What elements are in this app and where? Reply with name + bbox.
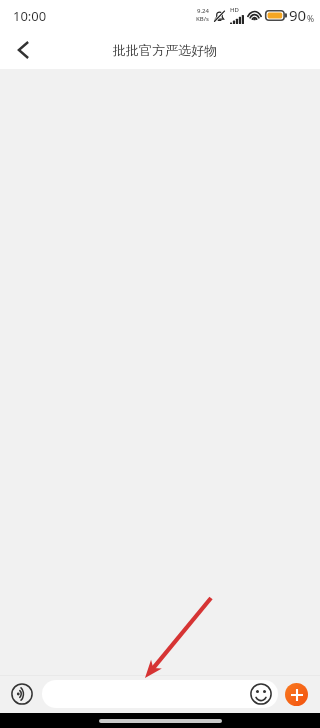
button[interactable]: Emoji bbox=[250, 683, 272, 705]
button[interactable]: Voice input bbox=[11, 683, 33, 705]
staticText: 批批官方严选好物 bbox=[113, 42, 217, 58]
button[interactable]: More options bbox=[285, 683, 308, 706]
staticText: 10:00 bbox=[13, 7, 47, 25]
button[interactable] bbox=[42, 680, 278, 708]
staticText: KB/s bbox=[196, 15, 209, 23]
staticText: HD bbox=[230, 6, 239, 14]
button[interactable]: Back bbox=[0, 30, 46, 69]
staticText: % bbox=[307, 13, 315, 25]
staticText: 90 bbox=[289, 5, 307, 25]
staticText: 9.24 bbox=[197, 7, 209, 15]
